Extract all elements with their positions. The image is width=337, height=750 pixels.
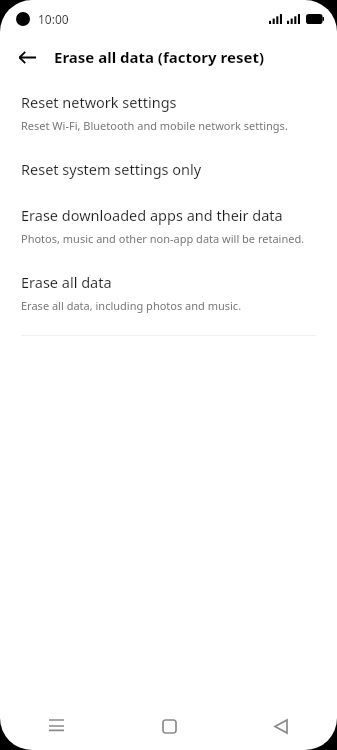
button[interactable]: Home [113,702,225,750]
staticText: Erase all data, including photos and mus… [21,298,242,313]
button[interactable]: Back [10,40,44,74]
button[interactable]: Erase all data [0,272,337,313]
staticText: Erase all data (factory reset) [54,47,264,67]
button[interactable]: Reset network settings [0,92,337,133]
button[interactable]: Back [225,702,337,750]
staticText: Reset Wi-Fi, Bluetooth and mobile networ… [21,118,288,133]
staticText: Erase downloaded apps and their data [21,205,283,225]
staticText: Erase all data [21,272,112,292]
staticText: 10:00 [38,11,69,27]
button[interactable]: Reset system settings only [0,159,337,179]
staticText: Reset system settings only [21,159,202,179]
button[interactable]: Erase downloaded apps and their data [0,205,337,246]
staticText: Photos, music and other non-app data wil… [21,231,305,246]
staticText: Reset network settings [21,92,177,112]
button[interactable]: Recents [0,702,113,750]
